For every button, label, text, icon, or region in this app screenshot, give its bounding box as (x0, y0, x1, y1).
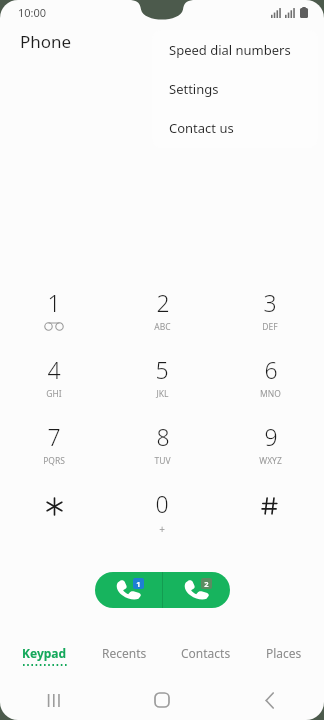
staticText: Contact us (169, 119, 234, 137)
staticText: Contacts (181, 645, 231, 661)
staticText: Phone (20, 30, 72, 53)
button[interactable]: 4 (0, 352, 108, 419)
button[interactable]: Keypad (16, 643, 73, 668)
button[interactable]: Contact us (152, 108, 318, 147)
staticText: 9 (264, 421, 278, 452)
button[interactable] (0, 486, 108, 553)
button[interactable]: 5 (108, 352, 216, 419)
button[interactable]: Contacts (175, 643, 237, 663)
staticText: 10:00 (18, 5, 47, 20)
button[interactable]: 0 (108, 486, 216, 553)
button[interactable]: 9 (216, 419, 324, 486)
button[interactable]: Back (250, 680, 290, 720)
staticText: 7 (47, 421, 61, 452)
staticText: Places (266, 645, 302, 661)
button[interactable] (216, 486, 324, 553)
button[interactable]: Recent apps (34, 680, 74, 720)
staticText: ABC (154, 321, 171, 333)
staticText: 0 (155, 488, 169, 519)
button[interactable]: 3 (216, 285, 324, 352)
staticText: Recents (102, 645, 147, 661)
staticText: 2 (204, 579, 209, 589)
staticText: WXYZ (259, 455, 282, 467)
staticText: 8 (156, 421, 170, 452)
button[interactable]: Speed dial numbers (152, 30, 318, 69)
staticText: MNO (260, 388, 281, 400)
staticText: 2 (156, 287, 170, 318)
staticText: 3 (263, 287, 277, 318)
button[interactable]: Call with SIM 2 (163, 572, 230, 608)
staticText: 4 (47, 354, 61, 385)
staticText: 1 (47, 287, 61, 318)
staticText: PQRS (43, 455, 65, 467)
staticText: 5 (155, 354, 169, 385)
button[interactable]: Call with SIM 1 (95, 572, 162, 608)
button[interactable]: Home (142, 680, 182, 720)
staticText: GHI (46, 388, 62, 400)
staticText: Speed dial numbers (169, 41, 291, 59)
button[interactable]: 8 (108, 419, 216, 486)
staticText: + (159, 522, 165, 536)
staticText: Settings (169, 80, 219, 98)
staticText: 1 (136, 579, 141, 589)
button[interactable]: Recents (96, 643, 153, 663)
button[interactable]: 7 (0, 419, 108, 486)
button[interactable]: 2 (108, 285, 216, 352)
staticText: JKL (156, 388, 169, 400)
staticText: Keypad (22, 645, 67, 661)
staticText: 6 (264, 354, 278, 385)
staticText: TUV (154, 455, 171, 467)
button[interactable]: Places (260, 643, 308, 663)
button[interactable]: 1 (0, 285, 108, 352)
button[interactable]: 6 (216, 352, 324, 419)
button[interactable]: Settings (152, 69, 318, 108)
staticText: DEF (262, 321, 278, 333)
